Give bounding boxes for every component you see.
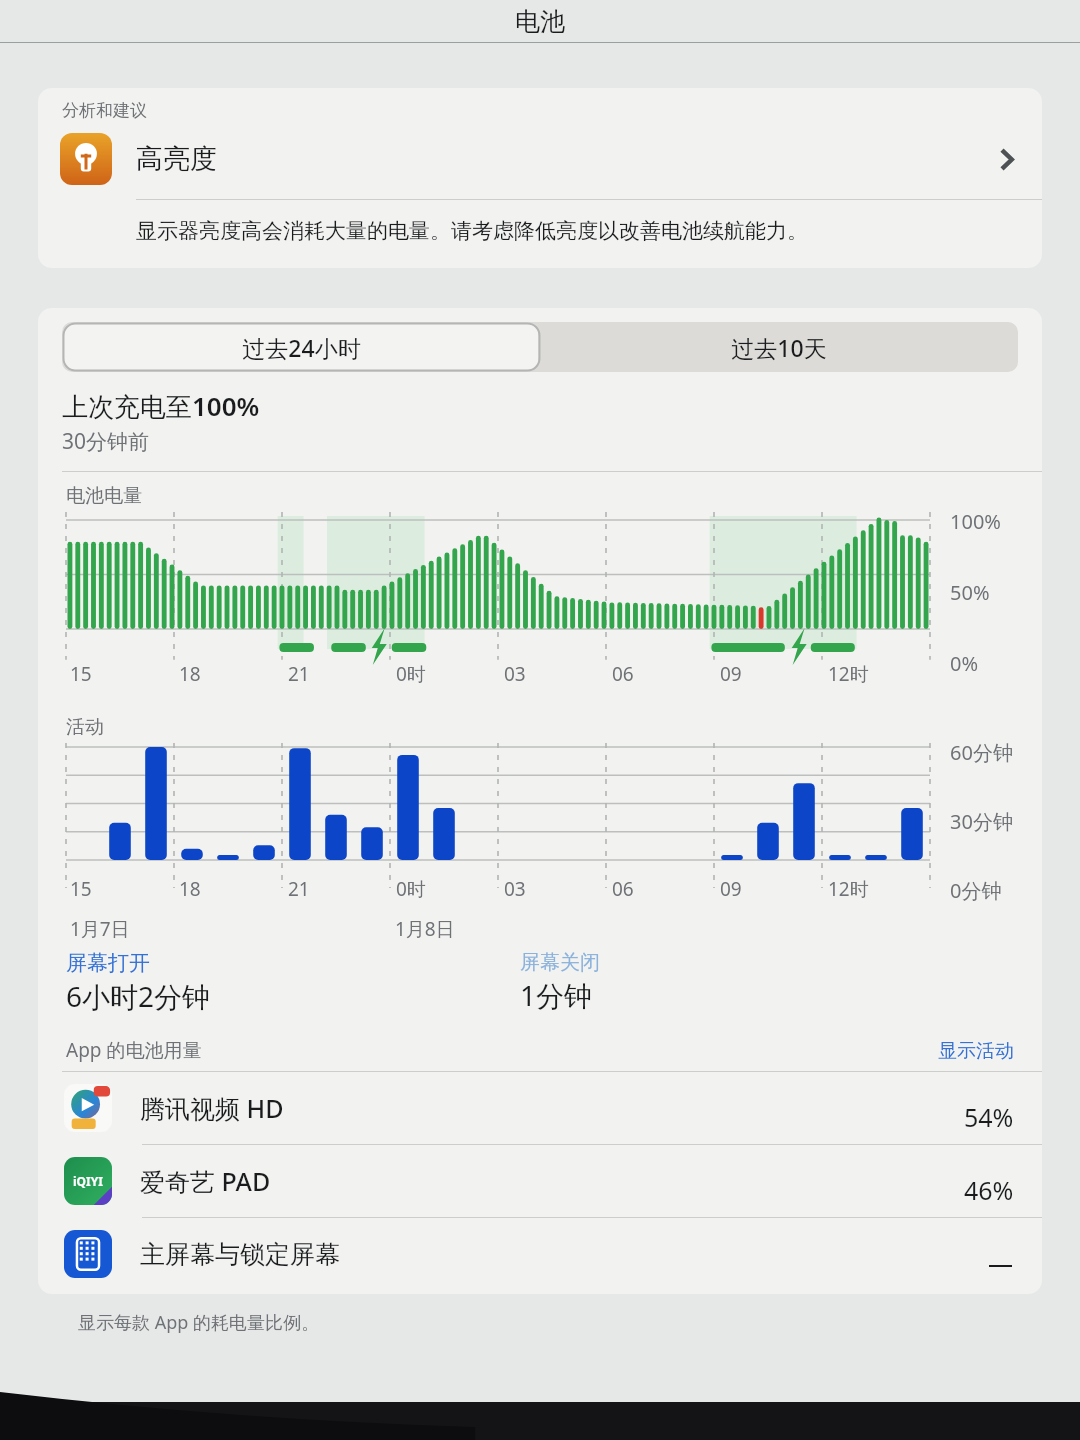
- staticText: 18: [179, 661, 201, 687]
- staticText: 1月8日: [395, 916, 455, 942]
- staticText: 15: [70, 661, 92, 687]
- staticText: 54%: [964, 1100, 1014, 1134]
- staticText: 12时: [828, 661, 869, 687]
- other: More: [999, 146, 1014, 173]
- staticText: 电池: [515, 6, 565, 37]
- staticText: 60分钟: [950, 739, 1013, 766]
- staticText: 腾讯视频 HD: [140, 1091, 284, 1125]
- staticText: 过去24小时: [242, 332, 361, 363]
- staticText: 46%: [964, 1173, 1014, 1207]
- staticText: 高亮度: [136, 142, 217, 176]
- staticText: 爱奇艺 PAD: [140, 1164, 271, 1198]
- button[interactable]: 显示活动: [938, 1039, 1014, 1063]
- staticText: 15: [70, 876, 92, 902]
- staticText: App 的电池用量: [66, 1037, 202, 1063]
- staticText: 上次充电至100%: [62, 388, 260, 424]
- staticText: 50%: [950, 579, 990, 606]
- staticText: 电池电量: [66, 484, 142, 508]
- staticText: 分析和建议: [62, 100, 147, 121]
- staticText: 0时: [396, 661, 426, 687]
- button[interactable]: 高亮度: [38, 133, 1042, 185]
- staticText: 06: [612, 661, 634, 687]
- staticText: 100%: [950, 508, 1001, 535]
- staticText: 0时: [396, 876, 426, 902]
- staticText: 09: [720, 876, 742, 902]
- button[interactable]: iQIYI: [38, 1145, 1042, 1217]
- button[interactable]: 过去24小时: [64, 324, 538, 370]
- staticText: 30分钟: [950, 808, 1013, 835]
- staticText: 12时: [828, 876, 869, 902]
- staticText: 显示活动: [938, 1039, 1014, 1063]
- staticText: 活动: [66, 715, 104, 739]
- staticText: 屏幕关闭: [520, 950, 600, 975]
- staticText: —: [988, 1246, 1014, 1280]
- staticText: 21: [288, 661, 310, 687]
- staticText: 1分钟: [520, 976, 593, 1014]
- staticText: iQIYI: [73, 1173, 103, 1189]
- staticText: 0%: [950, 650, 979, 677]
- staticText: 03: [504, 661, 526, 687]
- staticText: 09: [720, 661, 742, 687]
- staticText: 1月7日: [70, 916, 130, 942]
- staticText: 0分钟: [950, 877, 1002, 904]
- button[interactable]: 过去10天: [540, 322, 1018, 372]
- staticText: 21: [288, 876, 310, 902]
- staticText: 显示每款 App 的耗电量比例。: [78, 1310, 320, 1335]
- staticText: 过去10天: [731, 332, 827, 363]
- staticText: 06: [612, 876, 634, 902]
- staticText: 主屏幕与锁定屏幕: [140, 1239, 340, 1270]
- staticText: 显示器亮度高会消耗大量的电量。请考虑降低亮度以改善电池续航能力。: [136, 218, 808, 244]
- staticText: 屏幕打开: [66, 950, 150, 976]
- staticText: 18: [179, 876, 201, 902]
- staticText: 30分钟前: [62, 427, 150, 456]
- staticText: 03: [504, 876, 526, 902]
- button[interactable]: 主屏幕与锁定屏幕: [38, 1218, 1042, 1290]
- staticText: 6小时2分钟: [66, 977, 211, 1015]
- button[interactable]: 腾讯视频 HD: [38, 1072, 1042, 1144]
